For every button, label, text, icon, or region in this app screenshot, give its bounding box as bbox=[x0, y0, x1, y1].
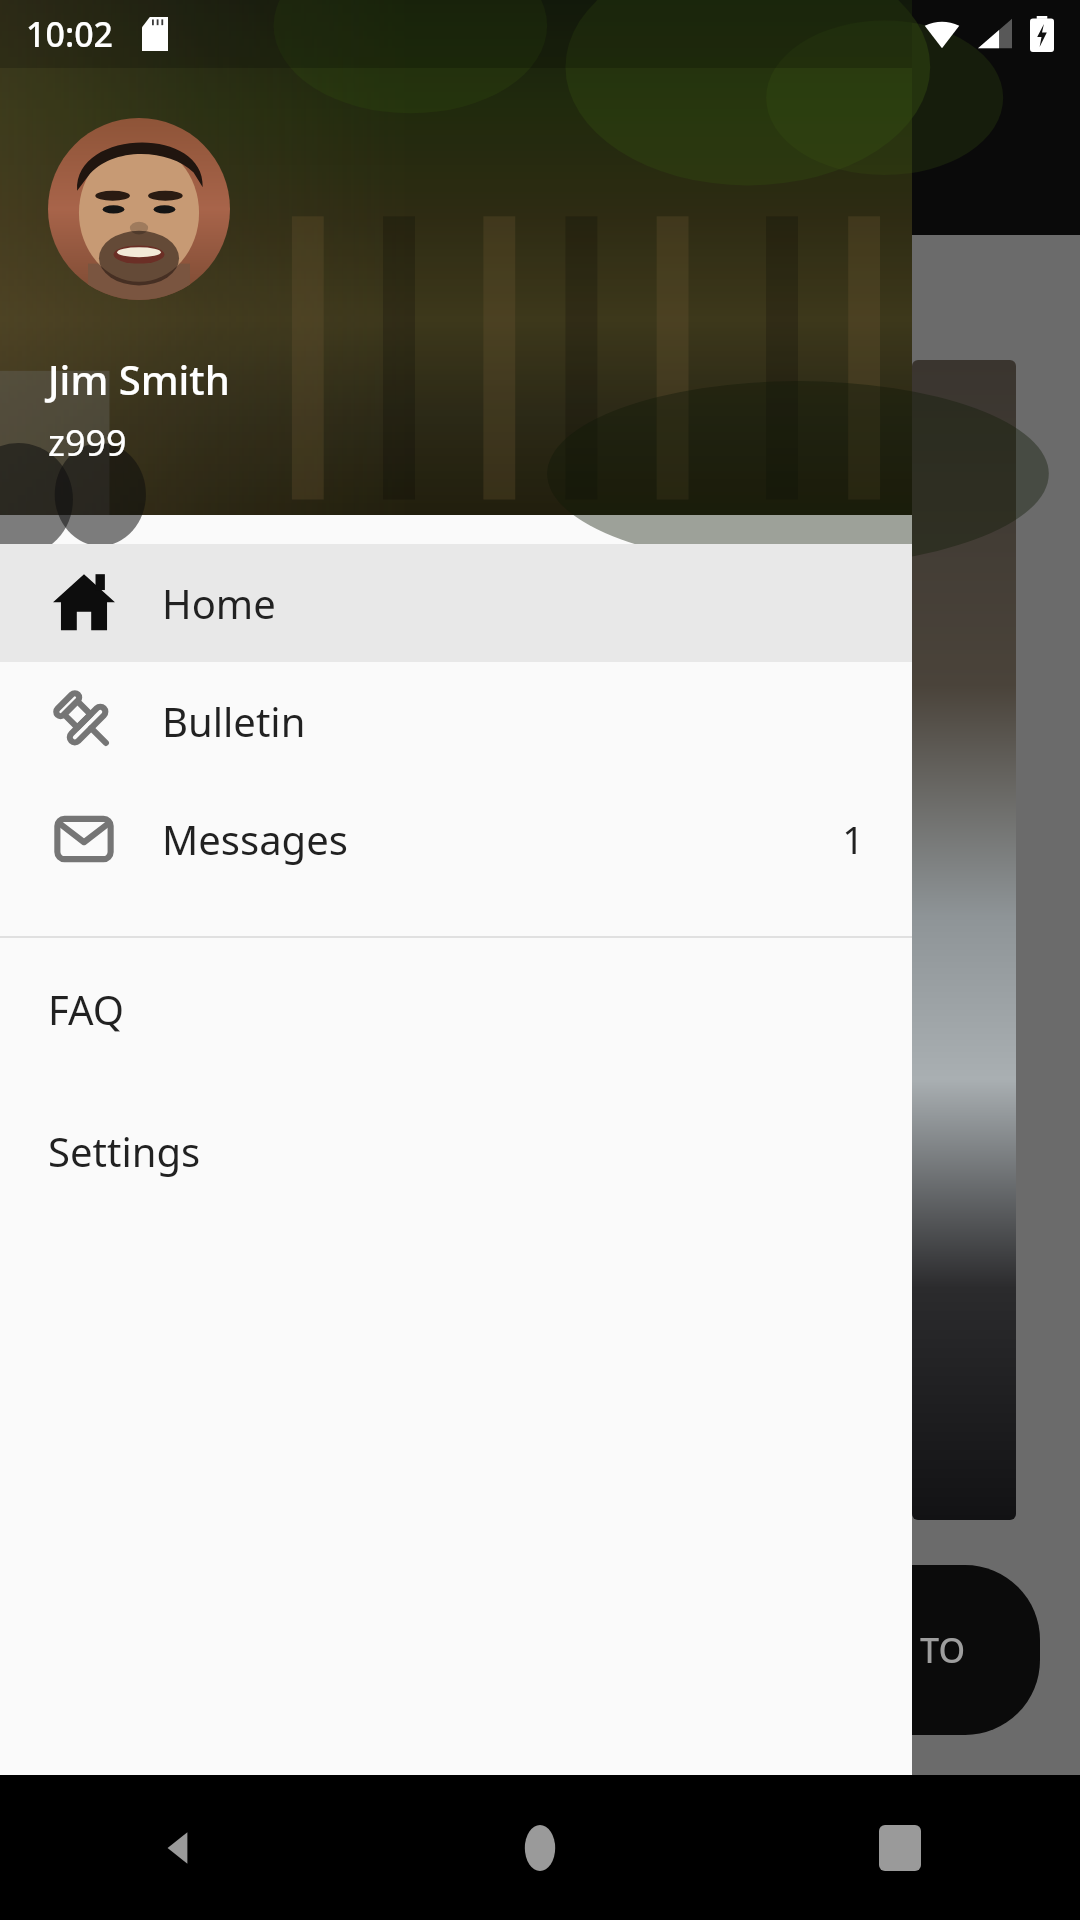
staticText: 1 bbox=[842, 813, 864, 865]
staticText: Home bbox=[162, 576, 276, 630]
staticText: Bulletin bbox=[162, 694, 306, 748]
staticText: FAQ bbox=[48, 982, 124, 1036]
staticText: Jim Smith bbox=[48, 352, 230, 406]
button[interactable]: Messages bbox=[0, 780, 912, 898]
button[interactable]: FAQ bbox=[0, 938, 912, 1080]
button[interactable]: Back bbox=[0, 1775, 360, 1920]
button[interactable]: TO bbox=[890, 1565, 1040, 1735]
staticText: Messages bbox=[162, 812, 348, 866]
staticText: 10:02 bbox=[26, 11, 114, 57]
button[interactable]: Home bbox=[360, 1775, 720, 1920]
button[interactable]: Settings bbox=[0, 1080, 912, 1222]
button[interactable]: Bulletin bbox=[0, 662, 912, 780]
staticText: Settings bbox=[48, 1124, 201, 1178]
button[interactable]: Home bbox=[0, 544, 912, 662]
staticText: TO bbox=[920, 1627, 966, 1673]
button[interactable]: Recent apps bbox=[720, 1775, 1080, 1920]
staticText: z999 bbox=[48, 418, 127, 467]
